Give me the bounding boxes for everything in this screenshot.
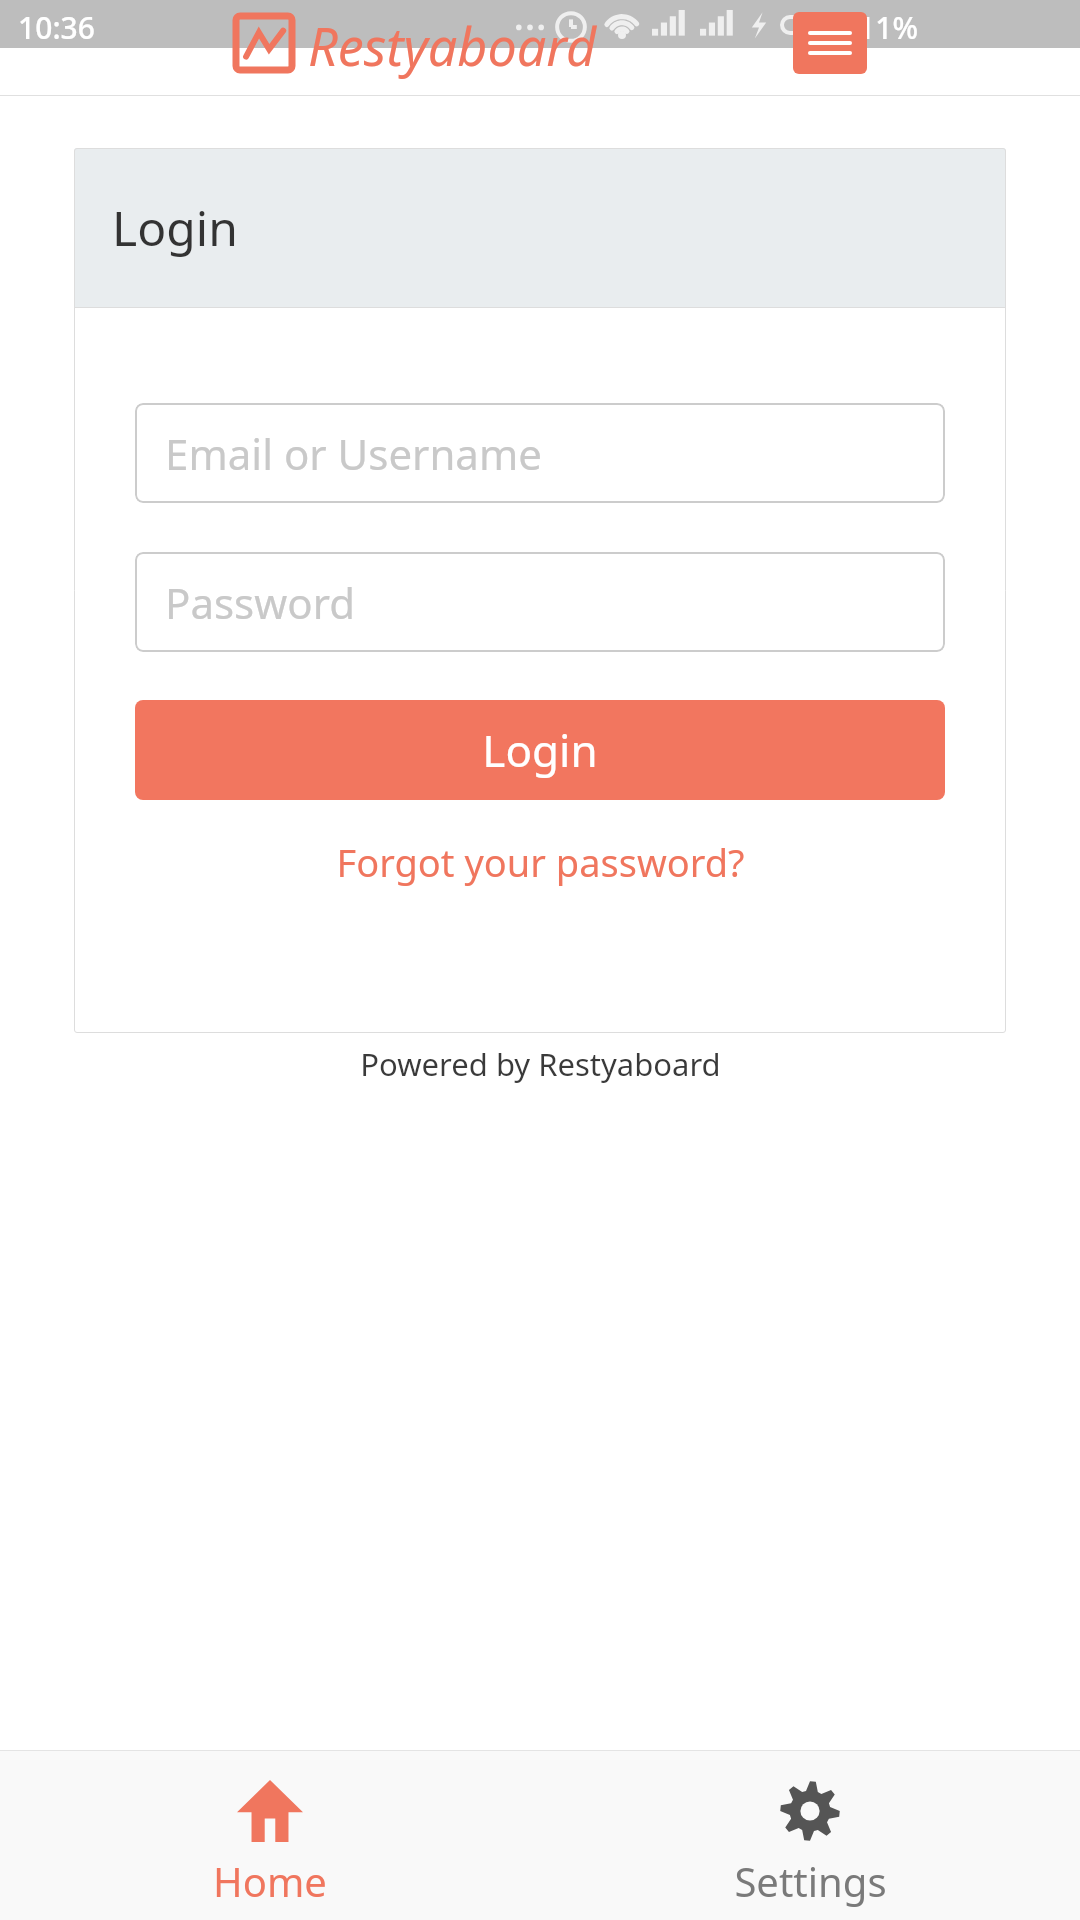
staticText: Forgot your password?	[336, 836, 745, 888]
staticText: Home	[213, 1854, 327, 1908]
button[interactable]: Login	[135, 700, 945, 800]
staticText: 10:36	[18, 7, 95, 48]
button[interactable]: Menu	[793, 12, 867, 74]
staticText: Restyaboard	[308, 10, 596, 81]
button[interactable]: Password	[135, 552, 945, 652]
button[interactable]: Home	[0, 1750, 540, 1920]
button[interactable]: Settings	[540, 1750, 1080, 1920]
staticText: Powered by Restyaboard	[360, 1043, 721, 1085]
staticText: Settings	[734, 1854, 887, 1908]
staticText: Email or Username	[165, 425, 542, 482]
staticText: Login	[112, 195, 238, 260]
staticText: 11%	[858, 7, 918, 48]
button[interactable]: Forgot your password?	[135, 832, 945, 892]
staticText: Login	[482, 720, 598, 780]
button[interactable]: Email or Username	[135, 403, 945, 503]
staticText: Password	[165, 574, 355, 631]
